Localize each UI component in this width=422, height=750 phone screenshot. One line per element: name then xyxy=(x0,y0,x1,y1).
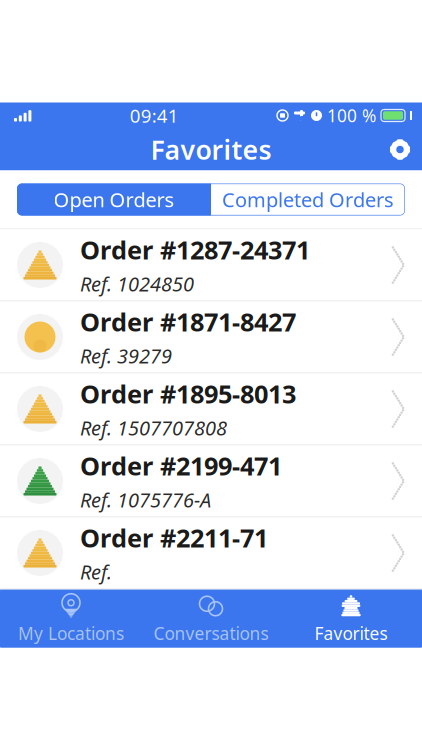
button[interactable]: Favorites xyxy=(281,590,421,647)
staticText: My Locations xyxy=(18,622,124,645)
button[interactable]: Open Orders xyxy=(17,183,211,215)
button[interactable]: Order #1895-8013 xyxy=(0,373,422,445)
staticText: Ref. 1024850 xyxy=(80,270,194,297)
staticText: Order #1871-8427 xyxy=(80,305,296,338)
button[interactable]: Order #2199-471 xyxy=(0,445,422,517)
staticText: 100 % xyxy=(327,104,376,127)
staticText: Ref. 1075776-A xyxy=(80,486,211,513)
staticText: Completed Orders xyxy=(222,186,394,213)
staticText: Open Orders xyxy=(53,186,174,213)
button[interactable]: Order #2211-71 xyxy=(0,517,422,589)
staticText: Order #1895-8013 xyxy=(80,377,296,410)
button[interactable]: My Locations xyxy=(1,590,141,647)
staticText: Order #2199-471 xyxy=(80,449,282,482)
staticText: Order #1287-24371 xyxy=(80,233,310,266)
staticText: Favorites xyxy=(150,132,271,167)
button[interactable]: Order #1871-8427 xyxy=(0,301,422,373)
staticText: Order #2211-71 xyxy=(80,521,268,554)
staticText: 09:41 xyxy=(130,103,179,128)
button[interactable]: Conversations xyxy=(141,590,281,647)
staticText: Favorites xyxy=(314,622,387,645)
staticText: Ref. 1507707808 xyxy=(80,414,227,441)
button[interactable]: Completed Orders xyxy=(211,183,405,215)
button[interactable]: Settings xyxy=(378,128,422,170)
staticText: Ref. 39279 xyxy=(80,342,172,369)
button[interactable]: Order #1287-24371 xyxy=(0,229,422,301)
staticText: Conversations xyxy=(153,622,268,645)
staticText: Ref. xyxy=(80,558,112,585)
